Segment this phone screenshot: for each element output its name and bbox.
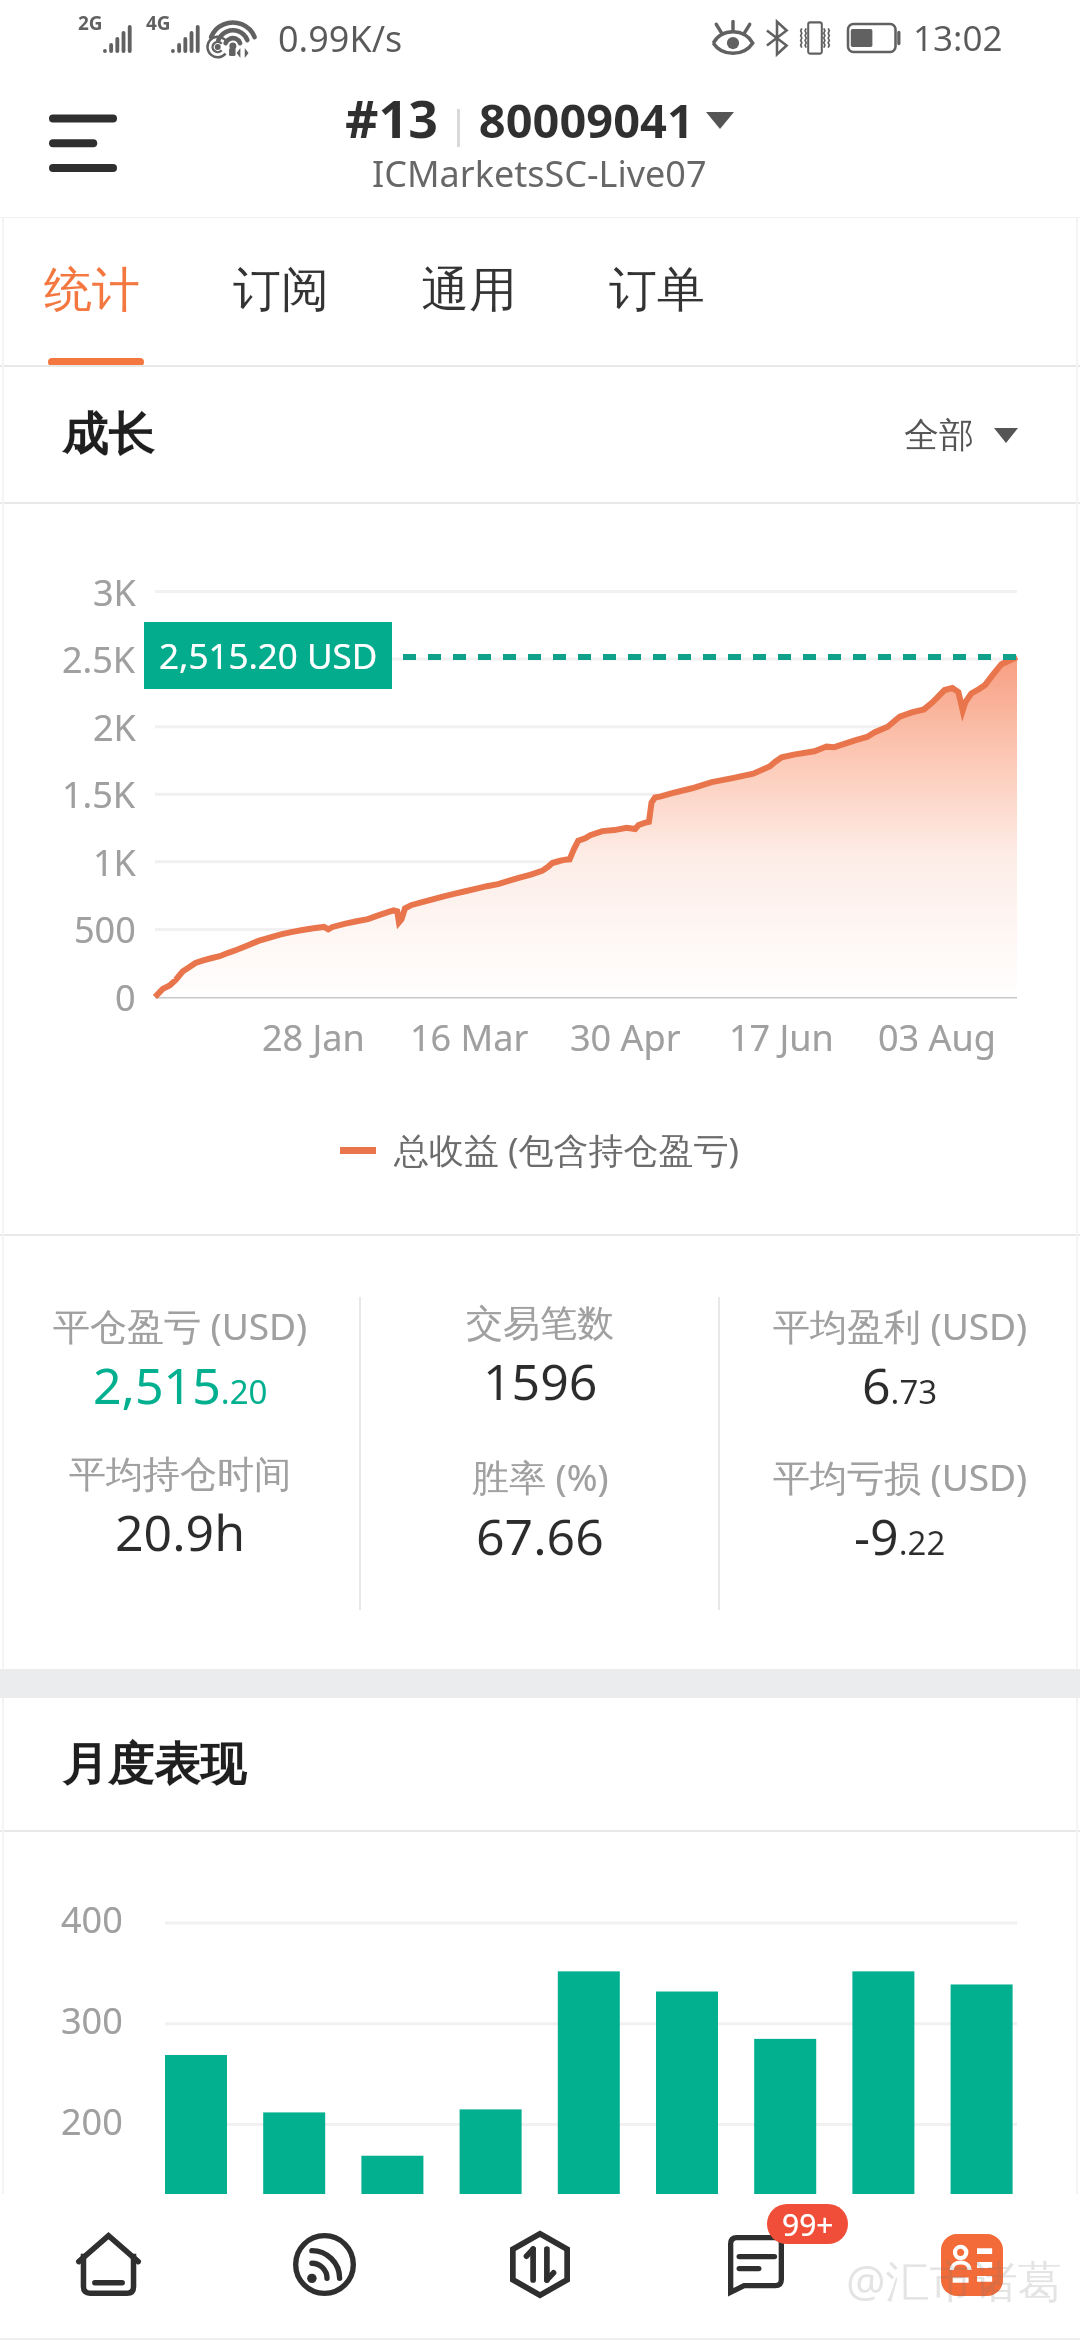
button[interactable]: Menu <box>19 89 115 185</box>
staticText: 13:02 <box>913 14 1003 62</box>
staticText: 6.73 <box>862 1351 938 1419</box>
staticText: 30 Apr <box>570 1013 681 1062</box>
staticText: 500 <box>74 905 136 954</box>
staticText: 28 Jan <box>262 1013 365 1062</box>
staticText: 全部 <box>904 413 974 457</box>
staticText: 17 Jun <box>729 1013 834 1062</box>
staticText: 统计 <box>44 260 140 320</box>
staticText: 总收益 (包含持仓盈亏) <box>394 1126 740 1174</box>
staticText: 平均盈利 (USD) <box>773 1300 1028 1351</box>
staticText: 2K <box>93 703 136 752</box>
button[interactable]: 通用 <box>376 218 562 367</box>
staticText: 订单 <box>609 260 705 320</box>
button[interactable]: 订单 <box>564 218 750 367</box>
staticText: 200 <box>61 2097 123 2146</box>
staticText: 订阅 <box>233 260 329 320</box>
button[interactable]: 订阅 <box>188 218 374 367</box>
staticText: 20.9h <box>115 1498 246 1566</box>
staticText: 1596 <box>483 1347 598 1415</box>
staticText: 月度表现 <box>62 1736 246 1794</box>
staticText: 胜率 (%) <box>472 1451 609 1502</box>
staticText: 4G <box>146 10 171 36</box>
staticText: 平均亏损 (USD) <box>773 1451 1028 1502</box>
staticText: 平仓盈亏 (USD) <box>53 1300 308 1351</box>
staticText: 2.5K <box>62 635 136 684</box>
staticText: 03 Aug <box>878 1013 996 1062</box>
staticText: 3K <box>93 568 136 617</box>
staticText: 1K <box>93 838 136 887</box>
staticText: 0 <box>115 973 136 1022</box>
button[interactable]: 统计 <box>0 218 185 367</box>
staticText: 通用 <box>421 260 517 320</box>
staticText: 交易笔数 <box>466 1300 614 1347</box>
button[interactable]: Trade <box>432 2194 648 2335</box>
staticText: 1.5K <box>62 770 136 819</box>
staticText: #13 | 80009041 <box>345 82 694 153</box>
staticText: ICMarketsSC-Live07 <box>372 149 707 198</box>
staticText: 2,515.20 <box>93 1351 268 1419</box>
button[interactable]: Messages <box>648 2194 864 2335</box>
button[interactable]: Signals <box>216 2194 432 2335</box>
button[interactable]: More <box>864 2194 1080 2335</box>
staticText: 平均持仓时间 <box>69 1451 291 1498</box>
staticText: 16 Mar <box>410 1013 529 1062</box>
button[interactable]: 全部 <box>874 391 1048 479</box>
staticText: -9.22 <box>854 1502 946 1570</box>
staticText: 2,515.20 USD <box>159 632 378 680</box>
staticText: 成长 <box>62 406 154 464</box>
staticText: @汇市诸葛 <box>846 2250 1062 2310</box>
staticText: 300 <box>61 1996 123 2045</box>
button[interactable]: Home <box>0 2194 216 2335</box>
staticText: 2G <box>78 10 103 36</box>
staticText: 99+ <box>782 2204 834 2244</box>
staticText: 0.99K/s <box>278 14 403 63</box>
staticText: 67.66 <box>476 1502 604 1570</box>
staticText: 400 <box>61 1895 123 1944</box>
